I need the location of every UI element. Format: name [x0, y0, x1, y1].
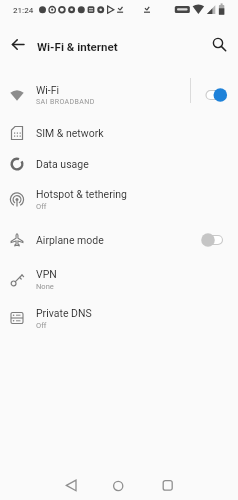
button[interactable] [106, 474, 130, 498]
staticText: Private DNS [36, 307, 92, 319]
staticText: SIM & network [36, 127, 104, 139]
button[interactable]: Wi-Fi [0, 70, 238, 119]
button[interactable] [207, 31, 231, 55]
button[interactable] [6, 31, 30, 55]
staticText: Data usage [36, 158, 89, 170]
button[interactable]: Data usage [0, 147, 238, 180]
button[interactable]: Airplane mode [0, 219, 238, 261]
button[interactable] [155, 473, 179, 497]
staticText: Hotspot & tethering [36, 188, 127, 200]
button[interactable]: Private DNS [0, 296, 238, 340]
button[interactable]: SIM & network [0, 119, 238, 147]
staticText: Wi-Fi [36, 84, 60, 96]
staticText: VPN [36, 268, 57, 280]
button[interactable] [200, 85, 238, 105]
staticText: Airplane mode [36, 234, 104, 246]
button[interactable] [200, 230, 238, 250]
staticText: Off [36, 321, 47, 330]
button[interactable]: Hotspot & tethering [0, 180, 238, 219]
staticText: 21:24 [13, 6, 34, 15]
staticText: Wi-Fi & internet [37, 40, 118, 53]
staticText: Off [36, 202, 47, 211]
button[interactable] [59, 473, 83, 497]
staticText: SAI BROADBAND [36, 98, 95, 106]
button[interactable]: VPN [0, 263, 238, 296]
staticText: None [36, 282, 54, 291]
